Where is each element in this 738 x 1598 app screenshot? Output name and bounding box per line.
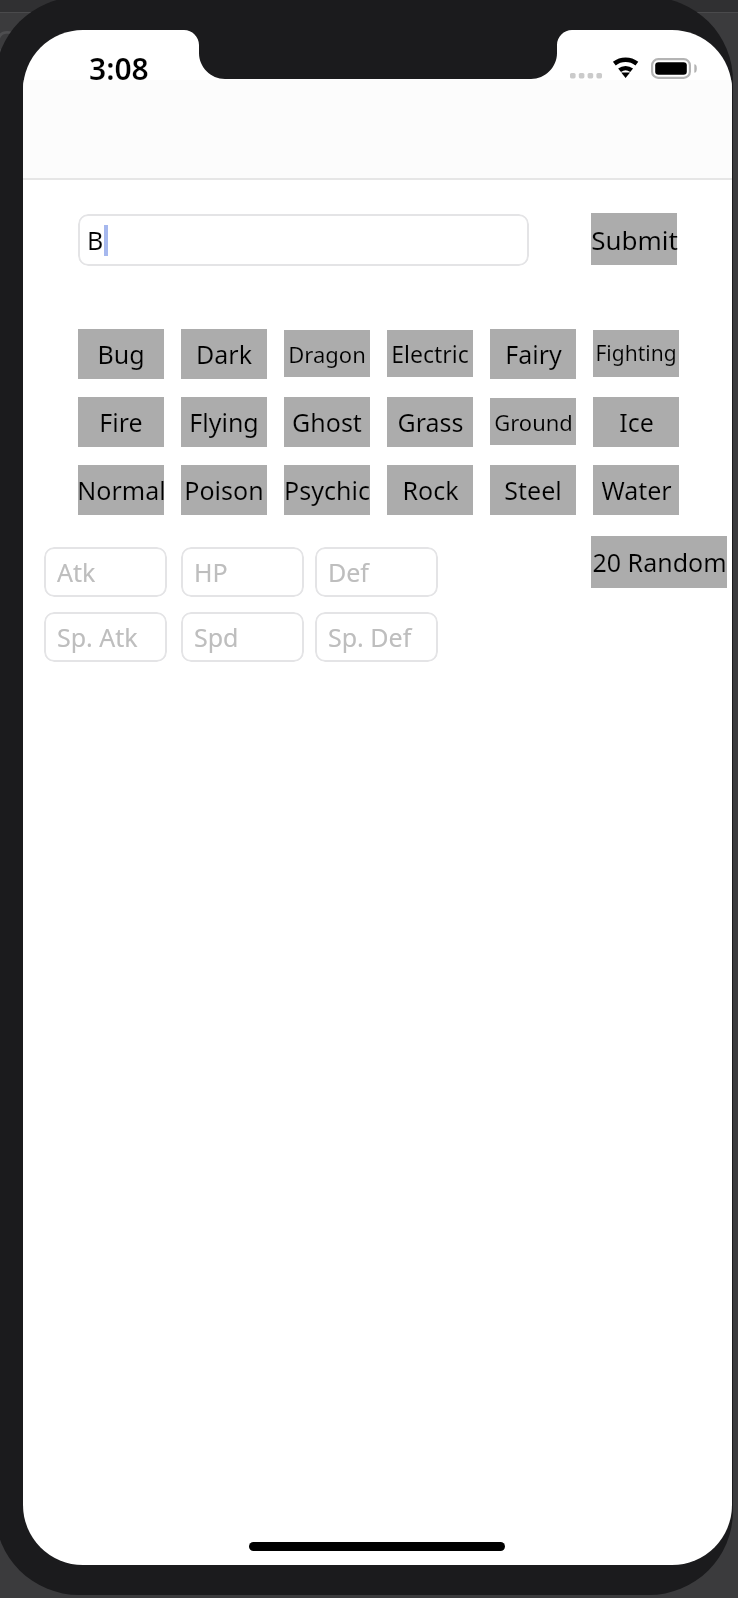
staticText: Flying — [189, 405, 259, 439]
staticText: Fighting — [595, 339, 677, 368]
staticText: Ice — [619, 405, 654, 439]
button[interactable]: Bug — [78, 329, 164, 379]
button[interactable]: Water — [593, 465, 679, 515]
button[interactable]: Ice — [593, 397, 679, 447]
button[interactable]: Fairy — [490, 329, 576, 379]
button[interactable]: Spd — [181, 612, 304, 662]
button[interactable]: Dragon — [284, 330, 370, 377]
button[interactable]: Ground — [490, 398, 576, 445]
staticText: Poison — [184, 473, 264, 507]
staticText: Normal — [77, 473, 166, 507]
staticText: Bug — [97, 337, 145, 371]
staticText: Fairy — [505, 337, 562, 371]
staticText: Grass — [397, 405, 464, 439]
staticText: B — [87, 223, 104, 257]
button[interactable]: Poison — [181, 465, 267, 515]
staticText: Water — [601, 473, 672, 507]
staticText: 3:08 — [89, 48, 149, 89]
staticText: Dragon — [288, 339, 366, 369]
button[interactable]: Electric — [387, 330, 473, 377]
button[interactable]: Sp. Atk — [44, 612, 167, 662]
button[interactable]: Grass — [387, 397, 473, 447]
staticText: Ghost — [292, 405, 362, 439]
staticText: Sp. Atk — [57, 620, 138, 654]
staticText: Submit — [591, 222, 678, 257]
button[interactable]: Psychic — [284, 465, 370, 515]
button[interactable]: Normal — [78, 465, 164, 515]
button[interactable]: Rock — [387, 465, 473, 515]
staticText: HP — [194, 555, 228, 589]
staticText: Ground — [494, 407, 573, 437]
button[interactable]: 20 Random — [591, 536, 727, 588]
button[interactable]: Ghost — [284, 397, 370, 447]
staticText: Rock — [402, 473, 459, 507]
staticText: 20 Random — [592, 545, 727, 579]
button[interactable]: Atk — [44, 547, 167, 597]
button[interactable]: Flying — [181, 397, 267, 447]
staticText: Dark — [196, 337, 252, 371]
button[interactable]: Dark — [181, 329, 267, 379]
button[interactable]: HP — [181, 547, 304, 597]
staticText: Atk — [57, 555, 96, 589]
staticText: Steel — [504, 473, 562, 507]
button[interactable]: Fighting — [593, 330, 679, 377]
button[interactable]: Fire — [78, 397, 164, 447]
staticText: Sp. Def — [328, 620, 412, 654]
staticText: Fire — [99, 405, 143, 439]
staticText: Op — [0, 20, 42, 66]
button[interactable]: Sp. Def — [315, 612, 438, 662]
button[interactable]: B — [78, 214, 529, 266]
button[interactable]: Def — [315, 547, 438, 597]
staticText: Def — [328, 555, 369, 589]
staticText: Spd — [194, 620, 239, 654]
staticText: Electric — [391, 338, 469, 369]
staticText: Psychic — [284, 473, 370, 507]
button[interactable]: Steel — [490, 465, 576, 515]
button[interactable]: Submit — [591, 213, 677, 265]
